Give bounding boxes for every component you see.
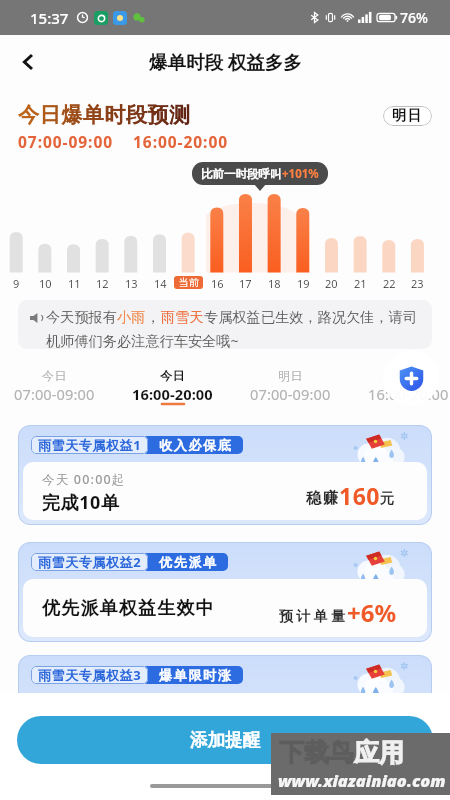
staticText: 07:00-09:00 bbox=[250, 384, 331, 404]
staticText: 11 bbox=[68, 276, 81, 291]
staticText: 优先派单权益生效中 bbox=[42, 597, 215, 620]
button[interactable]: 明日 bbox=[231, 368, 349, 404]
staticText: 稳赚 bbox=[305, 489, 339, 508]
button[interactable]: Back bbox=[8, 42, 48, 82]
staticText: 元 bbox=[380, 490, 394, 508]
staticText: 14 bbox=[154, 276, 167, 291]
button[interactable]: 明日 bbox=[349, 368, 450, 404]
staticText: 当前 bbox=[179, 276, 199, 289]
button[interactable]: 爆单限时涨 bbox=[18, 655, 432, 755]
staticText: 今天 00:00起 bbox=[42, 471, 126, 488]
staticText: 20 bbox=[325, 276, 338, 291]
button[interactable]: 优先派单 bbox=[18, 542, 432, 642]
staticText: 今日 bbox=[42, 368, 68, 383]
staticText: 23 bbox=[411, 276, 424, 291]
staticText: 18 bbox=[268, 276, 281, 291]
staticText: 明日 bbox=[392, 107, 423, 125]
staticText: 小雨 bbox=[117, 308, 146, 326]
staticText: 今天预报有 bbox=[46, 308, 117, 326]
staticText: 雨雪天专属权益2 bbox=[38, 553, 142, 571]
staticText: 下载鸟 bbox=[279, 737, 354, 768]
staticText: 22 bbox=[383, 276, 396, 291]
staticText: 19 bbox=[297, 276, 310, 291]
staticText: 添加提醒 bbox=[190, 729, 260, 751]
button[interactable]: 今日 bbox=[0, 368, 113, 404]
staticText: 雨雪天 bbox=[161, 308, 204, 326]
staticText: 10 bbox=[39, 276, 52, 291]
staticText: 专属权益已生效，路况欠佳，请司 bbox=[204, 308, 417, 326]
staticText: 完成10单 bbox=[42, 490, 120, 515]
staticText: 17 bbox=[239, 276, 252, 291]
staticText: 16:00-20:00 bbox=[368, 384, 449, 404]
staticText: 07:00-09:00 bbox=[18, 131, 114, 152]
staticText: 15:37 bbox=[30, 8, 69, 28]
staticText: 预计单量 bbox=[277, 608, 347, 626]
staticText: 21 bbox=[354, 276, 367, 291]
staticText: 13 bbox=[125, 276, 138, 291]
staticText: 雨雪天专属权益3 bbox=[38, 666, 142, 684]
staticText: 应用 bbox=[354, 737, 404, 768]
staticText: 16:00-20:00 bbox=[133, 131, 229, 152]
staticText: 16 bbox=[211, 276, 224, 291]
staticText: 爆单限时涨 bbox=[159, 667, 233, 683]
button[interactable]: Add reminder bbox=[399, 366, 424, 391]
staticText: +6% bbox=[347, 596, 397, 629]
staticText: 比前一时段呼叫 bbox=[201, 167, 282, 181]
staticText: www.xiazainiao.com bbox=[278, 769, 446, 791]
staticText: 160 bbox=[339, 480, 380, 511]
button[interactable]: 明日 bbox=[383, 106, 432, 126]
staticText: ， bbox=[146, 308, 161, 326]
staticText: 爆单时段 权益多多 bbox=[149, 49, 302, 74]
staticText: 今日 bbox=[160, 368, 186, 383]
staticText: 07:00-09:00 bbox=[14, 384, 95, 404]
staticText: 机师傅们务必注意行车安全哦~ bbox=[46, 331, 239, 349]
button[interactable]: 收入必保底 bbox=[18, 425, 432, 525]
staticText: 明日 bbox=[396, 368, 422, 383]
staticText: 优先派单 bbox=[159, 554, 218, 570]
staticText: 76% bbox=[400, 8, 428, 27]
staticText: 雨雪天专属权益1 bbox=[38, 436, 142, 454]
staticText: +101% bbox=[282, 166, 319, 182]
staticText: 明日 bbox=[278, 368, 304, 383]
staticText: 16:00-20:00 bbox=[132, 384, 213, 404]
staticText: 12 bbox=[96, 276, 109, 291]
staticText: 今日爆单时段预测 bbox=[18, 102, 191, 128]
staticText: 收入必保底 bbox=[159, 437, 233, 453]
button[interactable]: 今日 bbox=[113, 368, 231, 404]
button[interactable]: 添加提醒 bbox=[17, 716, 433, 764]
staticText: 9 bbox=[13, 276, 20, 291]
